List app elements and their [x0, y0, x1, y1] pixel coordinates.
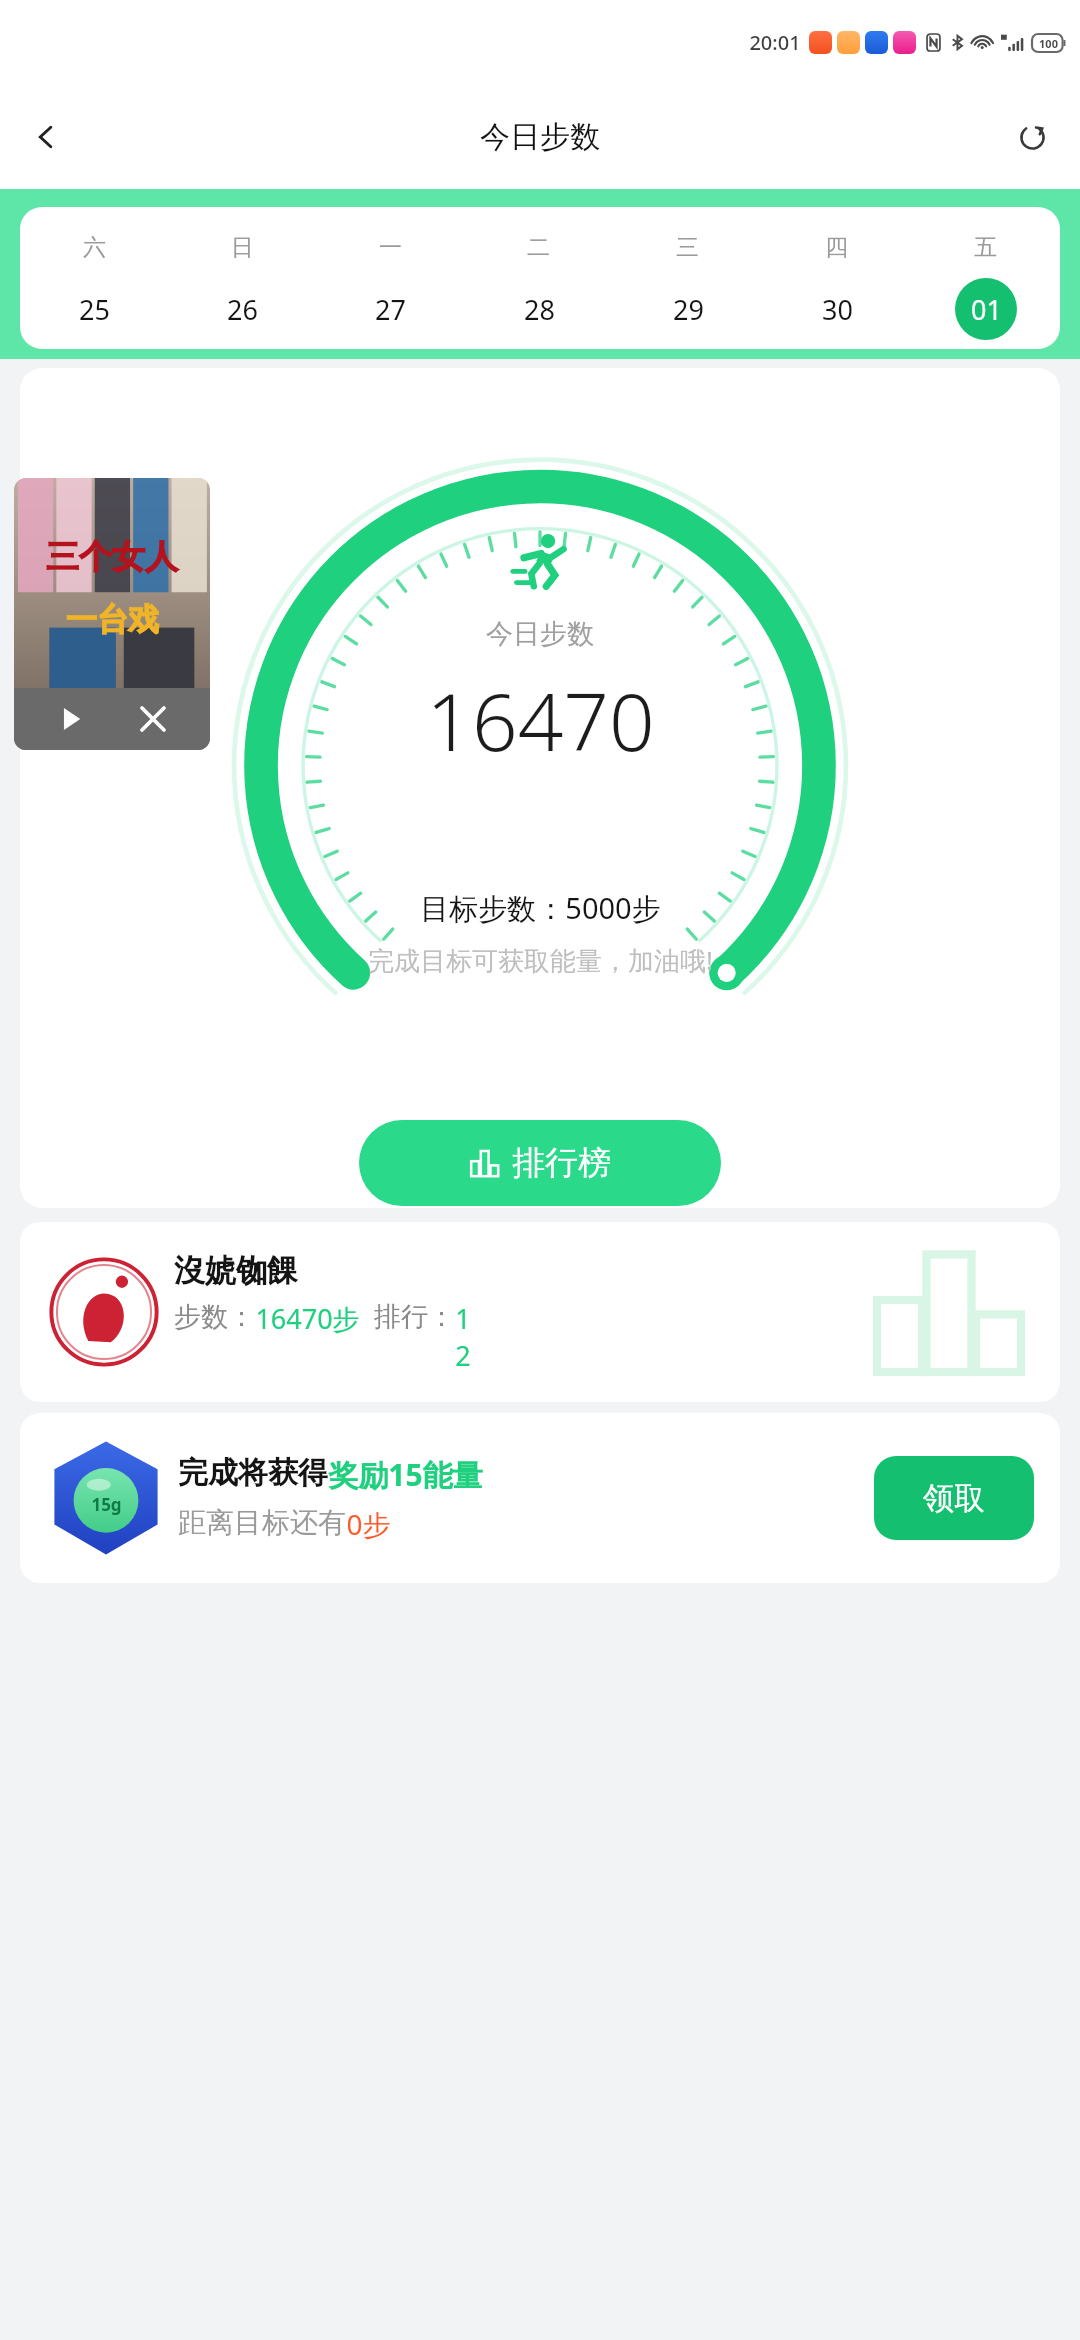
staticText: 目标步数：5000步 [420, 888, 661, 928]
staticText: 29 [673, 291, 704, 328]
staticText: 日 [231, 233, 254, 262]
button[interactable]: 沒婋铷餜 [20, 1222, 1060, 1402]
staticText: 今日步数 [486, 617, 594, 651]
staticText: 沒婋铷餜 [174, 1251, 298, 1290]
staticText: 步数： [174, 1300, 255, 1334]
staticText: 二 [527, 233, 550, 262]
staticText: 16470步 [255, 1300, 360, 1337]
staticText: 01 [971, 291, 1002, 328]
staticText: 30 [822, 291, 853, 328]
staticText: 排行： [374, 1300, 455, 1334]
staticText: 1 [455, 1300, 471, 1337]
button[interactable]: 26 [211, 278, 273, 340]
staticText: 26 [227, 291, 258, 328]
staticText: 16470 [426, 665, 655, 774]
staticText: 完成将获得 [178, 1454, 328, 1492]
staticText: 奖励15能量 [328, 1454, 483, 1495]
button[interactable]: Close [129, 695, 177, 743]
staticText: 六 [83, 233, 106, 262]
button[interactable]: Play [47, 695, 95, 743]
button[interactable]: 28 [508, 278, 570, 340]
staticText: 今日步数 [480, 118, 600, 156]
button[interactable]: 30 [806, 278, 868, 340]
staticText: 一 [379, 233, 402, 262]
button[interactable]: 29 [657, 278, 719, 340]
staticText: 28 [524, 291, 555, 328]
staticText: 三个女人 [46, 536, 178, 578]
staticText: 20:01 [749, 29, 801, 56]
button[interactable]: Back [18, 109, 74, 165]
staticText: 完成目标可获取能量，加油哦! [368, 942, 713, 978]
staticText: 2 [455, 1337, 471, 1374]
staticText: 距离目标还有 [178, 1505, 346, 1540]
button[interactable]: 领取 [874, 1456, 1034, 1540]
staticText: 100 [1039, 36, 1058, 51]
button[interactable]: Refresh [1004, 109, 1060, 165]
button[interactable]: 01 [955, 278, 1017, 340]
staticText: 0步 [346, 1505, 391, 1543]
button[interactable]: 27 [359, 278, 421, 340]
staticText: 四 [825, 233, 848, 262]
staticText: 一台戏 [66, 600, 159, 639]
staticText: 15g [91, 1493, 122, 1516]
staticText: 领取 [923, 1479, 985, 1518]
button[interactable]: 排行榜 [359, 1120, 721, 1206]
staticText: 27 [375, 291, 406, 328]
staticText: 三 [676, 233, 699, 262]
staticText: 排行榜 [512, 1142, 611, 1184]
staticText: 五 [974, 233, 997, 262]
staticText: 25 [79, 291, 110, 328]
button[interactable]: 25 [63, 278, 125, 340]
